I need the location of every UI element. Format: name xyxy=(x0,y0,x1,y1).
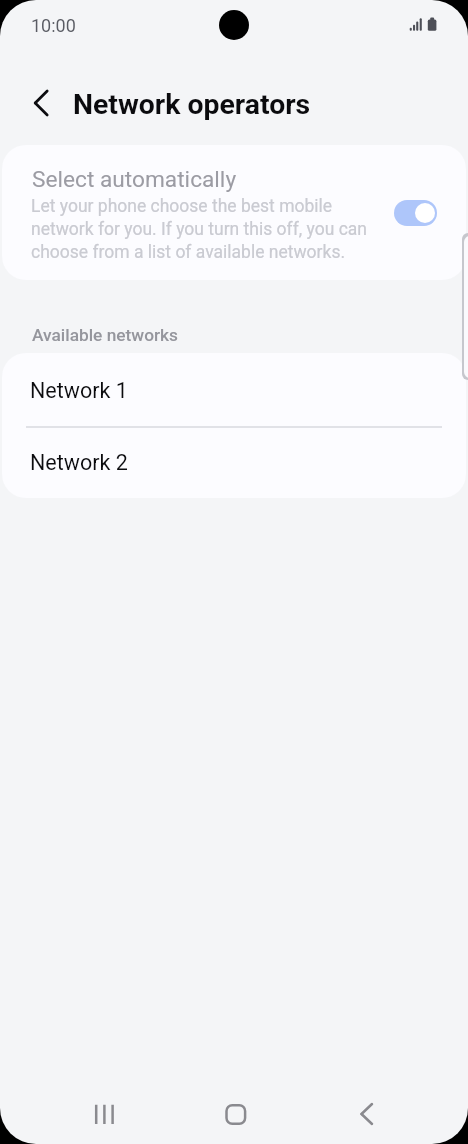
staticText: Available networks xyxy=(32,325,179,345)
button[interactable]: Home xyxy=(205,1084,265,1144)
button[interactable]: Navigate up xyxy=(16,79,64,127)
staticText: Network operators xyxy=(73,88,311,121)
button[interactable]: Recent apps xyxy=(74,1084,134,1144)
button[interactable]: Select automatically xyxy=(394,200,437,226)
button[interactable]: Network 2 xyxy=(2,427,466,498)
staticText: 10:00 xyxy=(31,15,76,36)
staticText: Let your phone choose the best mobile ne… xyxy=(31,196,368,262)
button[interactable]: Select automatically xyxy=(2,145,466,280)
button[interactable]: Network 1 xyxy=(2,353,466,427)
staticText: Network 2 xyxy=(30,450,128,475)
staticText: Network 1 xyxy=(30,378,128,403)
staticText: Select automatically xyxy=(32,166,237,193)
button[interactable]: Back xyxy=(336,1084,396,1144)
